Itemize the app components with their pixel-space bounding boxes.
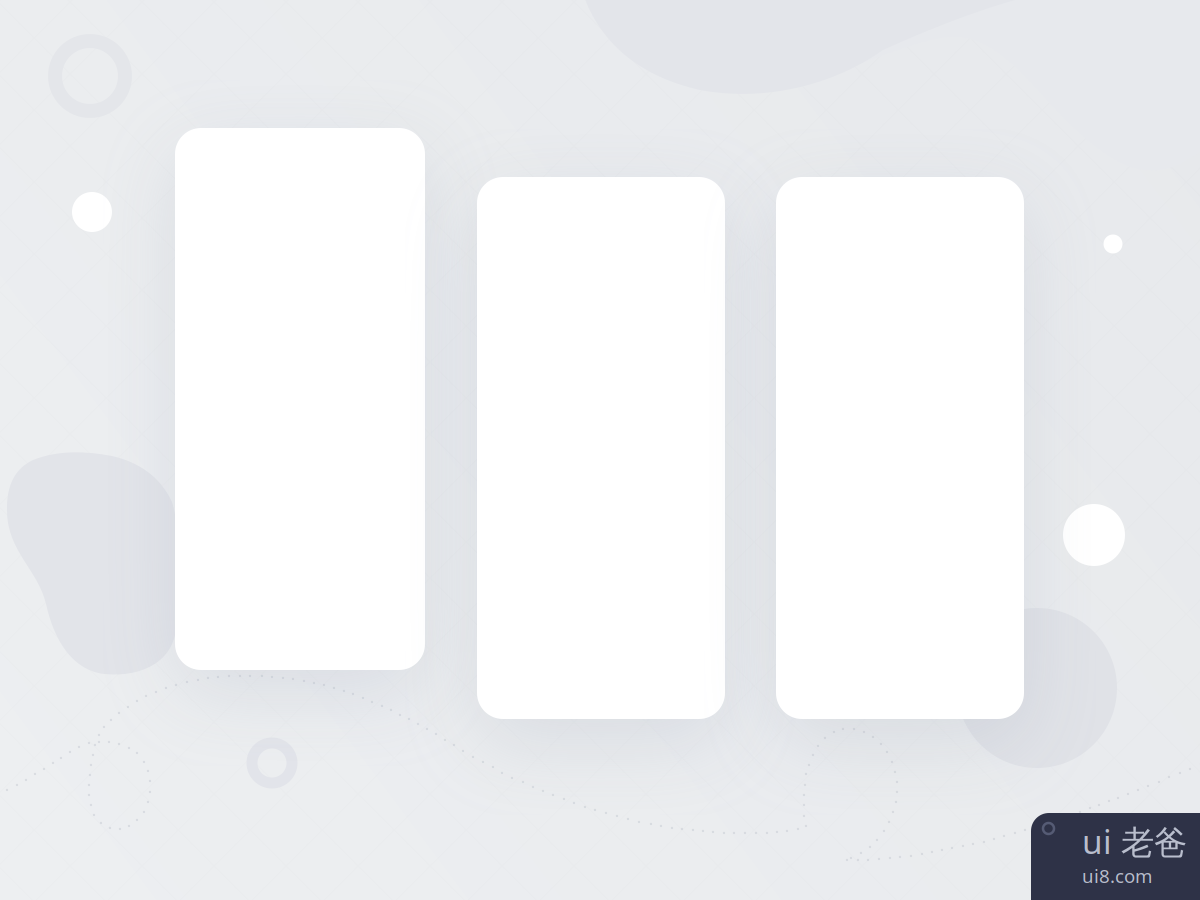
staticText: ui 老爸 bbox=[1082, 819, 1187, 863]
button[interactable]: ui8.com bbox=[1031, 813, 1200, 900]
staticText: ui8.com bbox=[1082, 863, 1152, 888]
